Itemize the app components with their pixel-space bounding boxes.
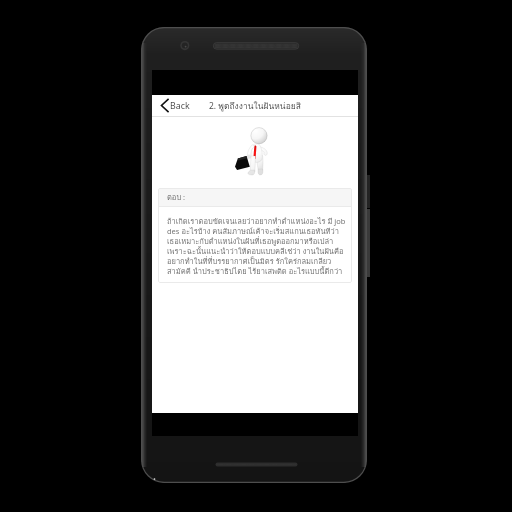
button[interactable]: Back [152,98,196,113]
staticText: 2. พูดถึงงานในฝันหน่อยสิ [209,99,301,113]
staticText: Back [170,100,190,112]
staticText: ถ้าเกิดเราตอบขัดเจนเลยว่าอยากทำตำแหน่งอะ… [167,215,346,277]
staticText: ตอบ : [167,191,186,203]
